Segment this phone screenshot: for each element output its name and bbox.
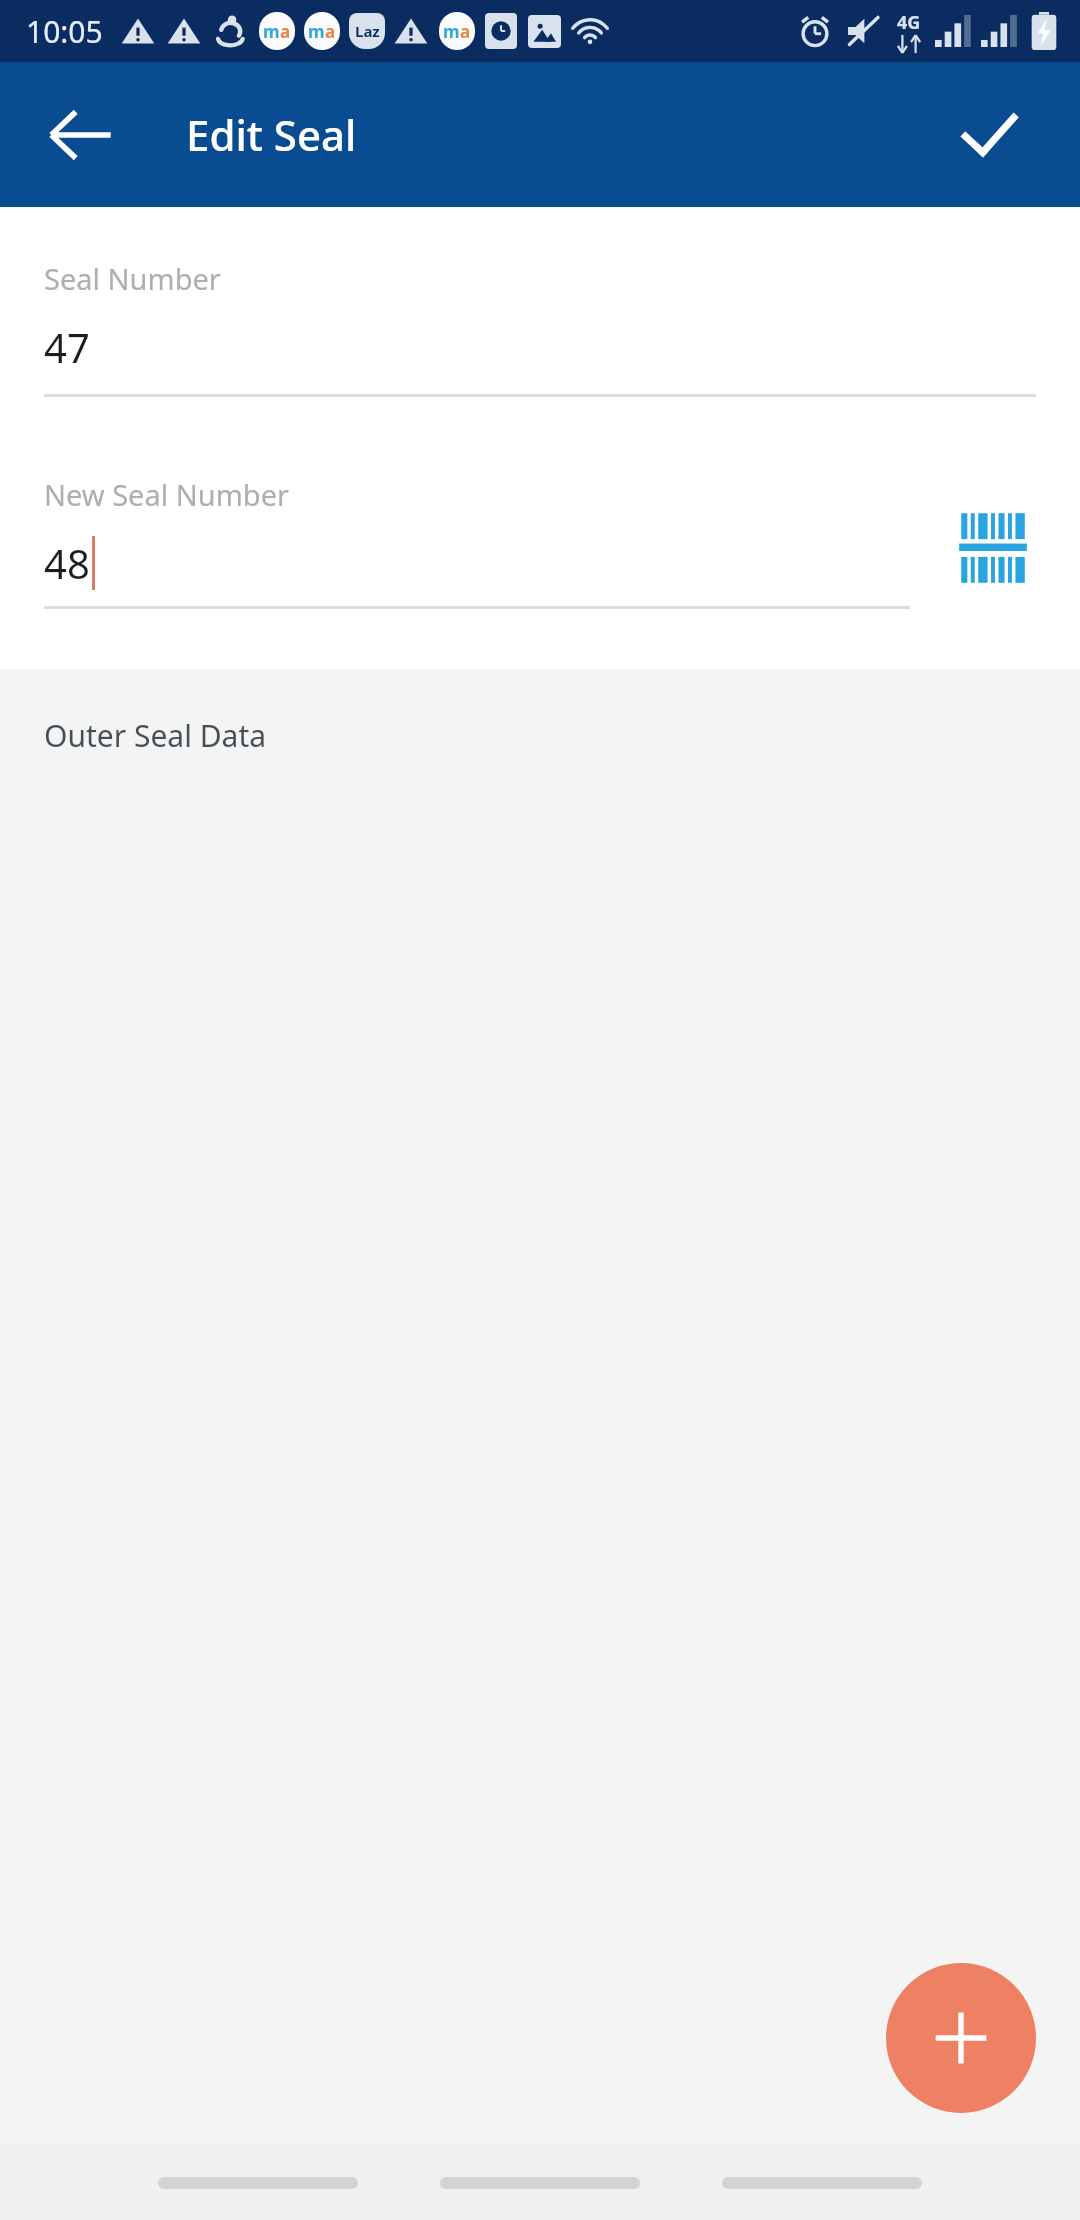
staticText: m [443, 20, 460, 43]
staticText: 47 [44, 320, 90, 374]
staticText: Edit Seal [186, 106, 357, 163]
staticText: a [460, 20, 471, 43]
staticText: New Seal Number [44, 475, 289, 514]
staticText: Outer Seal Data [44, 715, 267, 756]
button[interactable]: New Seal Number [44, 475, 910, 609]
staticText: a [280, 20, 291, 43]
staticText: 10:05 [26, 11, 103, 52]
staticText: Seal Number [44, 259, 221, 298]
button[interactable]: Save [934, 80, 1044, 190]
button[interactable]: Back [26, 80, 136, 190]
staticText: 4G [897, 10, 921, 35]
button[interactable] [722, 2177, 922, 2189]
button[interactable] [440, 2177, 640, 2189]
staticText: 48 [44, 536, 90, 590]
staticText: a [325, 20, 336, 43]
staticText: m [308, 20, 325, 43]
button[interactable] [158, 2177, 358, 2189]
staticText: Laz [355, 21, 380, 41]
button[interactable]: Scan barcode [950, 505, 1036, 591]
button[interactable]: Seal Number [0, 259, 1080, 397]
button[interactable]: Add outer seal [886, 1963, 1036, 2113]
staticText: m [263, 20, 280, 43]
